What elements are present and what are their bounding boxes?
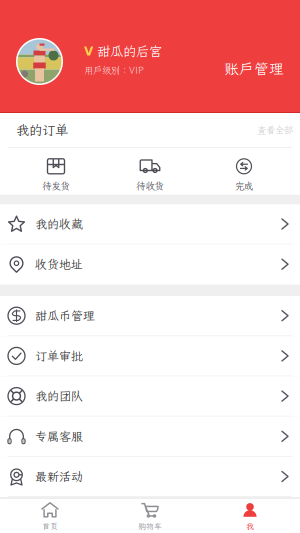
- button[interactable]: Home: [0, 499, 100, 533]
- staticText: 我的订单: [16, 121, 68, 139]
- button[interactable]: 收货地址: [0, 244, 300, 285]
- button[interactable]: 我的团队: [0, 376, 300, 417]
- staticText: 首页: [42, 521, 58, 531]
- button[interactable]: Cart: [100, 499, 200, 533]
- staticText: 订单审批: [35, 348, 83, 364]
- staticText: 账户管理: [224, 59, 284, 78]
- button[interactable]: 订单审批: [0, 336, 300, 376]
- staticText: 收货地址: [35, 256, 83, 272]
- button[interactable]: 甜瓜币管理: [0, 296, 300, 336]
- staticText: 完成: [235, 180, 253, 192]
- button[interactable]: 账户管理: [214, 21, 300, 102]
- button[interactable]: 完成: [197, 148, 291, 195]
- staticText: 最新活动: [35, 469, 83, 484]
- staticText: 购物车: [138, 521, 162, 531]
- staticText: 用户级别：VIP: [84, 64, 144, 76]
- staticText: 我: [246, 521, 254, 531]
- button[interactable]: 待发货: [9, 148, 103, 195]
- button[interactable]: 待收货: [103, 148, 197, 195]
- staticText: V: [84, 44, 93, 58]
- staticText: 待发货: [42, 180, 69, 192]
- staticText: 专属客服: [35, 428, 83, 444]
- staticText: 待收货: [136, 180, 163, 192]
- staticText: 甜瓜的后宫: [97, 43, 162, 60]
- button[interactable]: 最新活动: [0, 457, 300, 497]
- staticText: 甜瓜币管理: [35, 308, 95, 324]
- staticText: 我的团队: [35, 388, 83, 404]
- button[interactable]: 专属客服: [0, 417, 300, 457]
- staticText: 我的收藏: [35, 216, 83, 232]
- button[interactable]: Me: [200, 499, 300, 533]
- button[interactable]: 我的收藏: [0, 204, 300, 244]
- staticText: 查看全部: [257, 124, 293, 136]
- button[interactable]: 查看全部: [247, 113, 300, 147]
